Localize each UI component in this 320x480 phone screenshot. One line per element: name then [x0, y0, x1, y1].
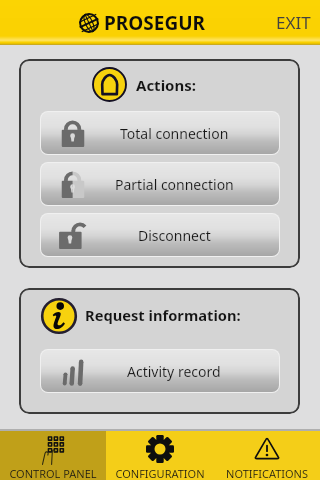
- button[interactable]: Disconnect: [40, 213, 280, 257]
- staticText: Request information:: [85, 305, 241, 325]
- staticText: PROSEGUR: [104, 10, 205, 36]
- staticText: NOTIFICATIONS: [226, 466, 308, 480]
- button[interactable]: EXIT: [262, 1, 320, 44]
- button[interactable]: Activity record: [40, 349, 280, 393]
- staticText: EXIT: [276, 11, 311, 34]
- staticText: CONFIGURATION: [115, 466, 205, 480]
- staticText: Activity record: [127, 362, 221, 381]
- button[interactable]: Total connection: [40, 111, 280, 155]
- button[interactable]: Partial connection: [40, 162, 280, 206]
- button[interactable]: CONTROL PANEL: [0, 431, 106, 480]
- staticText: CONTROL PANEL: [9, 466, 97, 480]
- button[interactable]: NOTIFICATIONS: [213, 431, 320, 480]
- staticText: Actions:: [136, 75, 196, 95]
- button[interactable]: CONFIGURATION: [106, 431, 213, 480]
- staticText: Disconnect: [138, 226, 211, 245]
- staticText: Total connection: [120, 124, 229, 143]
- staticText: Partial connection: [115, 175, 234, 194]
